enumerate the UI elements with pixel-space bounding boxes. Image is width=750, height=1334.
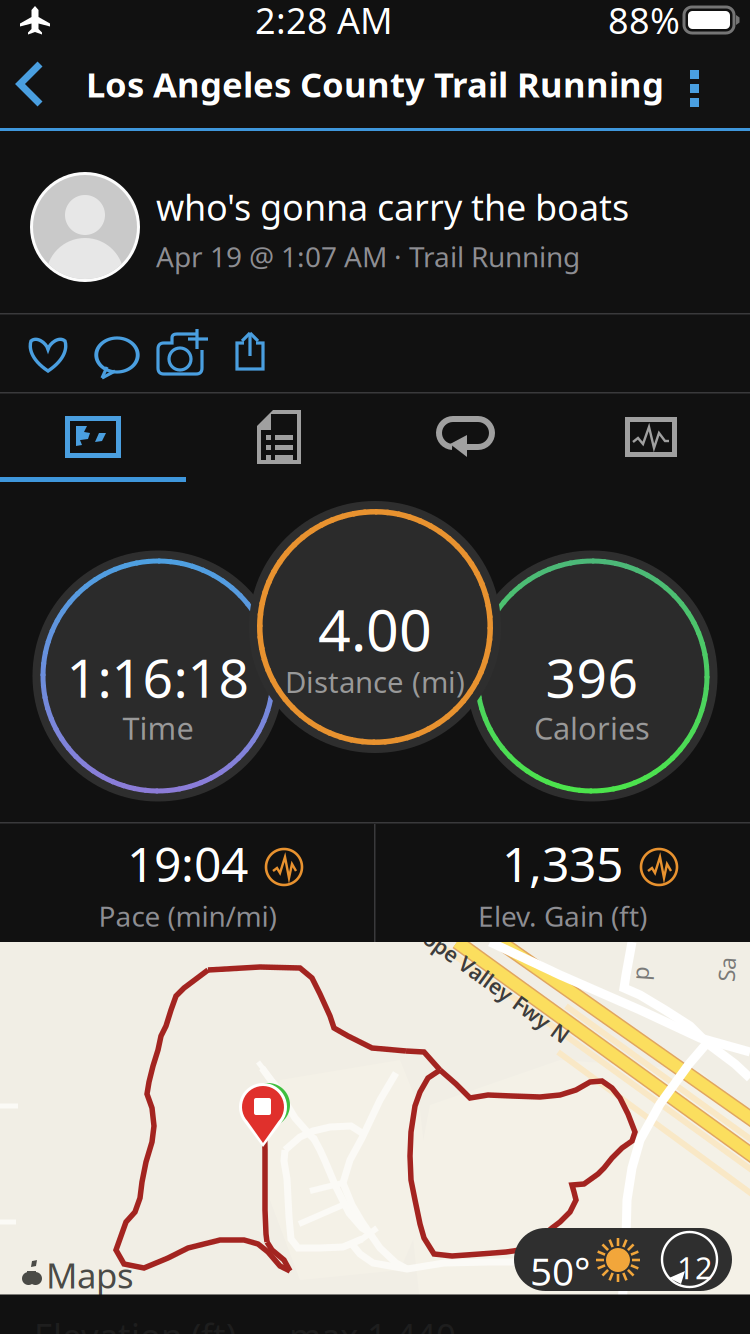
staticText: Pace (min/mi) [98,897,276,934]
staticText: 1,335 [502,831,623,895]
staticText: ntelope Valley Fwy N [372,960,588,988]
staticText: 19:04 [109,835,230,899]
staticText: 1,335 [484,835,605,899]
staticText: Maps [46,1252,134,1298]
button[interactable]: Laps [372,394,558,480]
staticText: Time [122,707,193,748]
button[interactable]: Graphs [558,394,744,480]
staticText: 19:04 [127,831,248,895]
staticText: 396 [545,642,638,712]
staticText: 12 [677,1247,713,1288]
button[interactable]: Splits [186,394,372,480]
staticText: 50° [530,1245,591,1296]
staticText: p [633,958,647,988]
button[interactable]: Share [216,312,286,388]
staticText: 4.00 [318,591,432,667]
staticText: 88% [608,0,680,44]
staticText: Los Angeles County Trail Running [86,61,664,107]
staticText: Elevation (ft) — max 1,440 [34,1312,456,1334]
staticText: Elev. Gain (ft) [478,897,647,934]
button[interactable]: Map [0,394,186,480]
staticText: Calories [534,707,650,748]
button[interactable]: More options [665,40,723,128]
button[interactable]: Like [14,315,84,391]
staticText: 2:28 AM [255,0,393,44]
staticText: who's gonna carry the boats [156,183,629,231]
staticText: 1:16:18 [66,642,249,712]
staticText: Sa [714,954,739,984]
staticText: Distance (mi) [285,662,465,701]
button[interactable]: Back [0,40,62,128]
staticText: Apr 19 @ 1:07 AM · Trail Running [156,238,580,275]
button[interactable]: Comment [82,315,152,391]
button[interactable]: Add photo [150,315,220,391]
